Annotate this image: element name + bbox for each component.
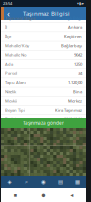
button[interactable]: Back <box>58 188 86 202</box>
staticText: ◈ <box>7 179 11 185</box>
staticText: İlçe <box>5 34 11 39</box>
staticText: Taşınmaz Bilgisi <box>23 9 70 17</box>
staticText: Mevkii <box>5 98 17 104</box>
staticText: Bina <box>73 89 82 94</box>
staticText: ‹ <box>7 7 10 20</box>
button[interactable]: More <box>69 176 86 188</box>
staticText: Parsel <box>5 70 17 76</box>
staticText: ▤ <box>58 179 63 185</box>
button[interactable]: Taşınmaza gönder <box>1 118 86 128</box>
button[interactable]: Measure <box>52 176 69 188</box>
staticText: Mahalle/Köy <box>5 43 29 48</box>
staticText: Beyan Tipi <box>5 107 25 113</box>
staticText: 9042 <box>74 52 82 58</box>
button[interactable]: Home <box>29 188 58 202</box>
staticText: ◉ <box>41 179 46 185</box>
staticText: Kira Taşınmaz <box>55 107 82 113</box>
staticText: ◀ <box>70 193 73 197</box>
staticText: 2018-10-01 <box>64 116 82 122</box>
staticText: ⬤ <box>41 193 45 197</box>
staticText: 1250 <box>74 61 82 67</box>
staticText: İl <box>5 24 7 30</box>
staticText: Detaylı Bilgi <box>60 15 82 21</box>
staticText: Bağlarbaşı <box>61 43 82 48</box>
staticText: 1.120,00 <box>68 80 82 85</box>
staticText: ■ <box>14 193 17 197</box>
staticText: 23:54 <box>3 1 12 6</box>
staticText: Mahalle No <box>5 52 27 58</box>
staticText: Taşınmaz Bilgisi <box>5 15 36 21</box>
button[interactable]: Locate <box>35 176 52 188</box>
staticText: Ada <box>5 61 13 67</box>
staticText: ⌕ <box>25 179 28 185</box>
staticText: Taşınmaza gönder <box>23 120 64 126</box>
staticText: Tarihi <box>5 116 16 122</box>
staticText: Nitelik <box>5 89 16 94</box>
button[interactable]: Layers <box>1 176 18 188</box>
button[interactable]: Search <box>18 176 35 188</box>
staticText: Ankara <box>68 24 82 30</box>
button[interactable]: Recents <box>1 188 29 202</box>
staticText: 34 <box>78 70 82 76</box>
button[interactable]: Back <box>4 7 13 20</box>
staticText: Tapu Alanı <box>5 80 26 85</box>
staticText: Merkez <box>68 98 82 104</box>
staticText: Keçiören <box>64 34 82 39</box>
staticText: ▾▮▰ <box>77 1 84 6</box>
staticText: ▦ <box>75 179 80 185</box>
